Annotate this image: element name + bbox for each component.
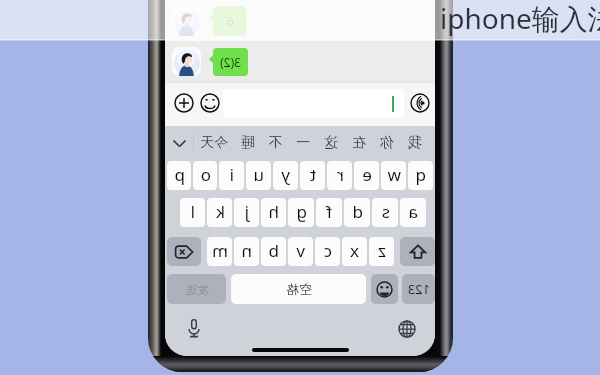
button[interactable]: 今天 <box>194 134 234 152</box>
button[interactable]: 3(2) <box>213 48 248 76</box>
button[interactable]: o <box>193 161 217 190</box>
staticText: j <box>244 200 249 223</box>
staticText: 睡 <box>241 134 255 152</box>
button[interactable] <box>223 89 404 118</box>
staticText: 我 <box>408 134 422 152</box>
button[interactable]: p <box>167 161 191 190</box>
button[interactable]: 你 <box>373 134 401 152</box>
staticText: 3(2) <box>220 54 241 70</box>
staticText: 空格 <box>286 281 312 297</box>
button[interactable]: z <box>369 237 394 266</box>
button[interactable]: x <box>342 237 367 266</box>
staticText: 发送 <box>185 282 209 297</box>
staticText: 今天 <box>200 134 228 152</box>
staticText: y <box>281 163 290 186</box>
button[interactable]: y <box>273 161 298 190</box>
button[interactable]: 空格 <box>231 274 366 304</box>
staticText: t <box>309 163 316 186</box>
staticText: e <box>362 163 372 186</box>
button[interactable]: a <box>400 198 426 227</box>
button[interactable]: s <box>372 198 398 227</box>
button[interactable]: 发送 <box>167 274 226 304</box>
button[interactable]: Add attachment <box>173 92 195 114</box>
button[interactable]: Switch language <box>398 320 416 338</box>
staticText: c <box>323 239 332 262</box>
button[interactable]: 在 <box>345 134 373 152</box>
staticText: 你 <box>380 134 394 152</box>
staticText: m <box>212 239 228 262</box>
button[interactable]: n <box>234 237 259 266</box>
staticText: 这 <box>324 134 338 152</box>
button[interactable]: i <box>219 161 244 190</box>
button[interactable]: b <box>261 237 286 266</box>
staticText: 123 <box>407 280 430 298</box>
button[interactable]: 123 <box>402 274 435 304</box>
staticText: u <box>253 163 264 186</box>
button[interactable]: Avatar <box>172 47 201 76</box>
staticText: 在 <box>352 134 366 152</box>
button[interactable]: c <box>315 237 340 266</box>
button[interactable]: j <box>234 198 259 227</box>
staticText: p <box>174 163 185 186</box>
staticText: r <box>336 163 344 186</box>
button[interactable]: 我 <box>401 134 429 152</box>
button[interactable]: 这 <box>317 134 345 152</box>
staticText: f <box>326 200 332 223</box>
staticText: 不 <box>268 134 282 152</box>
button[interactable]: Voice input <box>409 92 431 114</box>
button[interactable]: v <box>288 237 313 266</box>
staticText: l <box>190 200 195 223</box>
button[interactable]: Shift <box>400 237 435 266</box>
staticText: i <box>229 163 234 186</box>
button[interactable]: d <box>344 198 370 227</box>
staticText: 一 <box>296 134 310 152</box>
staticText: s <box>381 200 390 223</box>
button[interactable]: h <box>261 198 286 227</box>
button[interactable]: u <box>246 161 271 190</box>
staticText: x <box>350 239 359 262</box>
button[interactable]: Collapse keyboard <box>165 128 193 158</box>
staticText: h <box>268 200 279 223</box>
button[interactable]: k <box>207 198 232 227</box>
button[interactable]: f <box>316 198 342 227</box>
button[interactable]: Emoji keyboard <box>371 274 398 304</box>
button[interactable]: 一 <box>289 134 317 152</box>
staticText: b <box>268 239 279 262</box>
button[interactable]: l <box>180 198 205 227</box>
staticText: k <box>215 200 225 223</box>
staticText: 6 <box>226 12 234 30</box>
button[interactable]: Backspace <box>167 237 201 266</box>
button[interactable]: e <box>354 161 379 190</box>
button[interactable]: 6 <box>213 6 246 36</box>
button[interactable]: 睡 <box>234 134 261 152</box>
button[interactable]: w <box>381 161 406 190</box>
button[interactable]: Avatar <box>172 7 201 36</box>
staticText: o <box>200 163 211 186</box>
button[interactable]: g <box>288 198 314 227</box>
staticText: z <box>378 239 386 262</box>
staticText: iphone输入法 <box>440 0 600 37</box>
button[interactable]: t <box>300 161 325 190</box>
button[interactable]: Dictation <box>184 318 204 338</box>
button[interactable]: Emoji <box>199 92 221 114</box>
staticText: n <box>241 239 252 262</box>
staticText: d <box>352 200 363 223</box>
button[interactable]: m <box>207 237 232 266</box>
button[interactable]: 不 <box>261 134 289 152</box>
button[interactable]: q <box>408 161 433 190</box>
staticText: w <box>387 163 401 186</box>
staticText: q <box>415 163 426 186</box>
button[interactable]: r <box>327 161 352 190</box>
staticText: g <box>296 200 307 223</box>
staticText: v <box>296 239 305 262</box>
staticText: a <box>408 200 418 223</box>
